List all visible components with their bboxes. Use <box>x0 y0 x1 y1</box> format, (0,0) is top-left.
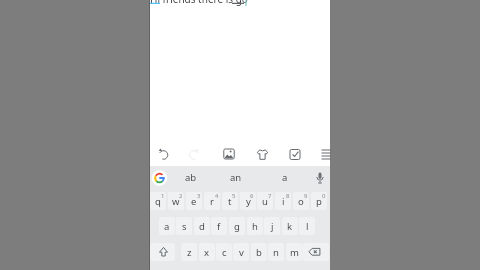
button[interactable]: b <box>251 243 267 261</box>
staticText: 5 <box>232 192 236 200</box>
button[interactable]: h <box>247 217 263 235</box>
button[interactable] <box>312 170 328 186</box>
staticText: z <box>187 246 192 259</box>
staticText: v <box>239 246 244 259</box>
staticText: a <box>164 220 170 233</box>
button[interactable] <box>156 146 172 162</box>
button[interactable]: u <box>257 192 273 210</box>
button[interactable] <box>150 243 175 261</box>
button[interactable]: x <box>199 243 215 261</box>
staticText: r <box>210 195 214 208</box>
staticText: w <box>172 195 180 208</box>
staticText: y <box>246 195 251 208</box>
button[interactable]: v <box>233 243 249 261</box>
staticText: o <box>298 195 304 208</box>
button[interactable]: r <box>204 192 220 210</box>
button[interactable]: ab <box>177 168 205 187</box>
button[interactable] <box>255 147 271 163</box>
staticText: q <box>155 195 161 208</box>
staticText: d <box>199 220 205 233</box>
staticText: a <box>282 171 288 184</box>
button[interactable]: l <box>299 217 315 235</box>
button[interactable]: w <box>168 192 184 210</box>
staticText: c <box>222 246 227 259</box>
staticText: 8 <box>286 192 290 200</box>
button[interactable]: y <box>240 192 256 210</box>
staticText: g <box>234 220 240 233</box>
staticText: x <box>204 246 210 259</box>
staticText: j <box>271 220 274 233</box>
staticText: u <box>262 195 268 208</box>
staticText: 2 <box>179 192 183 200</box>
staticText: 7 <box>268 192 272 200</box>
staticText: t <box>228 195 232 208</box>
button[interactable]: k <box>282 217 298 235</box>
button[interactable]: d <box>194 217 210 235</box>
staticText: n <box>273 246 279 259</box>
button[interactable] <box>221 146 237 162</box>
staticText: m <box>290 246 299 259</box>
staticText: an <box>230 171 242 184</box>
staticText: 1 <box>161 192 165 200</box>
button[interactable]: f <box>211 217 227 235</box>
button[interactable]: a <box>271 168 299 187</box>
button[interactable]: c <box>216 243 232 261</box>
button[interactable]: i <box>275 192 291 210</box>
staticText: h <box>252 220 258 233</box>
staticText: 0 <box>322 192 326 200</box>
button[interactable] <box>302 243 329 261</box>
button[interactable]: n <box>268 243 284 261</box>
staticText: b <box>256 246 262 259</box>
button[interactable]: j <box>264 217 280 235</box>
staticText: i <box>282 195 285 208</box>
button[interactable]: t <box>222 192 238 210</box>
button[interactable]: o <box>293 192 309 210</box>
staticText: ab <box>185 171 197 184</box>
staticText: l <box>306 220 309 233</box>
button[interactable]: q <box>150 192 166 210</box>
staticText: k <box>287 220 293 233</box>
button[interactable]: a <box>159 217 175 235</box>
staticText: p <box>316 195 322 208</box>
button[interactable] <box>186 146 202 162</box>
button[interactable] <box>287 147 303 163</box>
staticText: s <box>182 220 187 233</box>
staticText: f <box>217 220 221 233</box>
staticText: 9 <box>304 192 308 200</box>
staticText: Hi friends there is go <box>150 0 248 6</box>
button[interactable]: m <box>286 243 302 261</box>
button[interactable] <box>318 147 334 163</box>
button[interactable]: e <box>186 192 202 210</box>
staticText: 4 <box>215 192 219 200</box>
staticText: 6 <box>250 192 254 200</box>
button[interactable]: p <box>311 192 327 210</box>
button[interactable]: s <box>176 217 192 235</box>
button[interactable]: an <box>222 168 250 187</box>
button[interactable] <box>152 170 168 186</box>
button[interactable]: g <box>229 217 245 235</box>
staticText: 3 <box>197 192 201 200</box>
button[interactable]: z <box>181 243 197 261</box>
staticText: e <box>191 195 197 208</box>
